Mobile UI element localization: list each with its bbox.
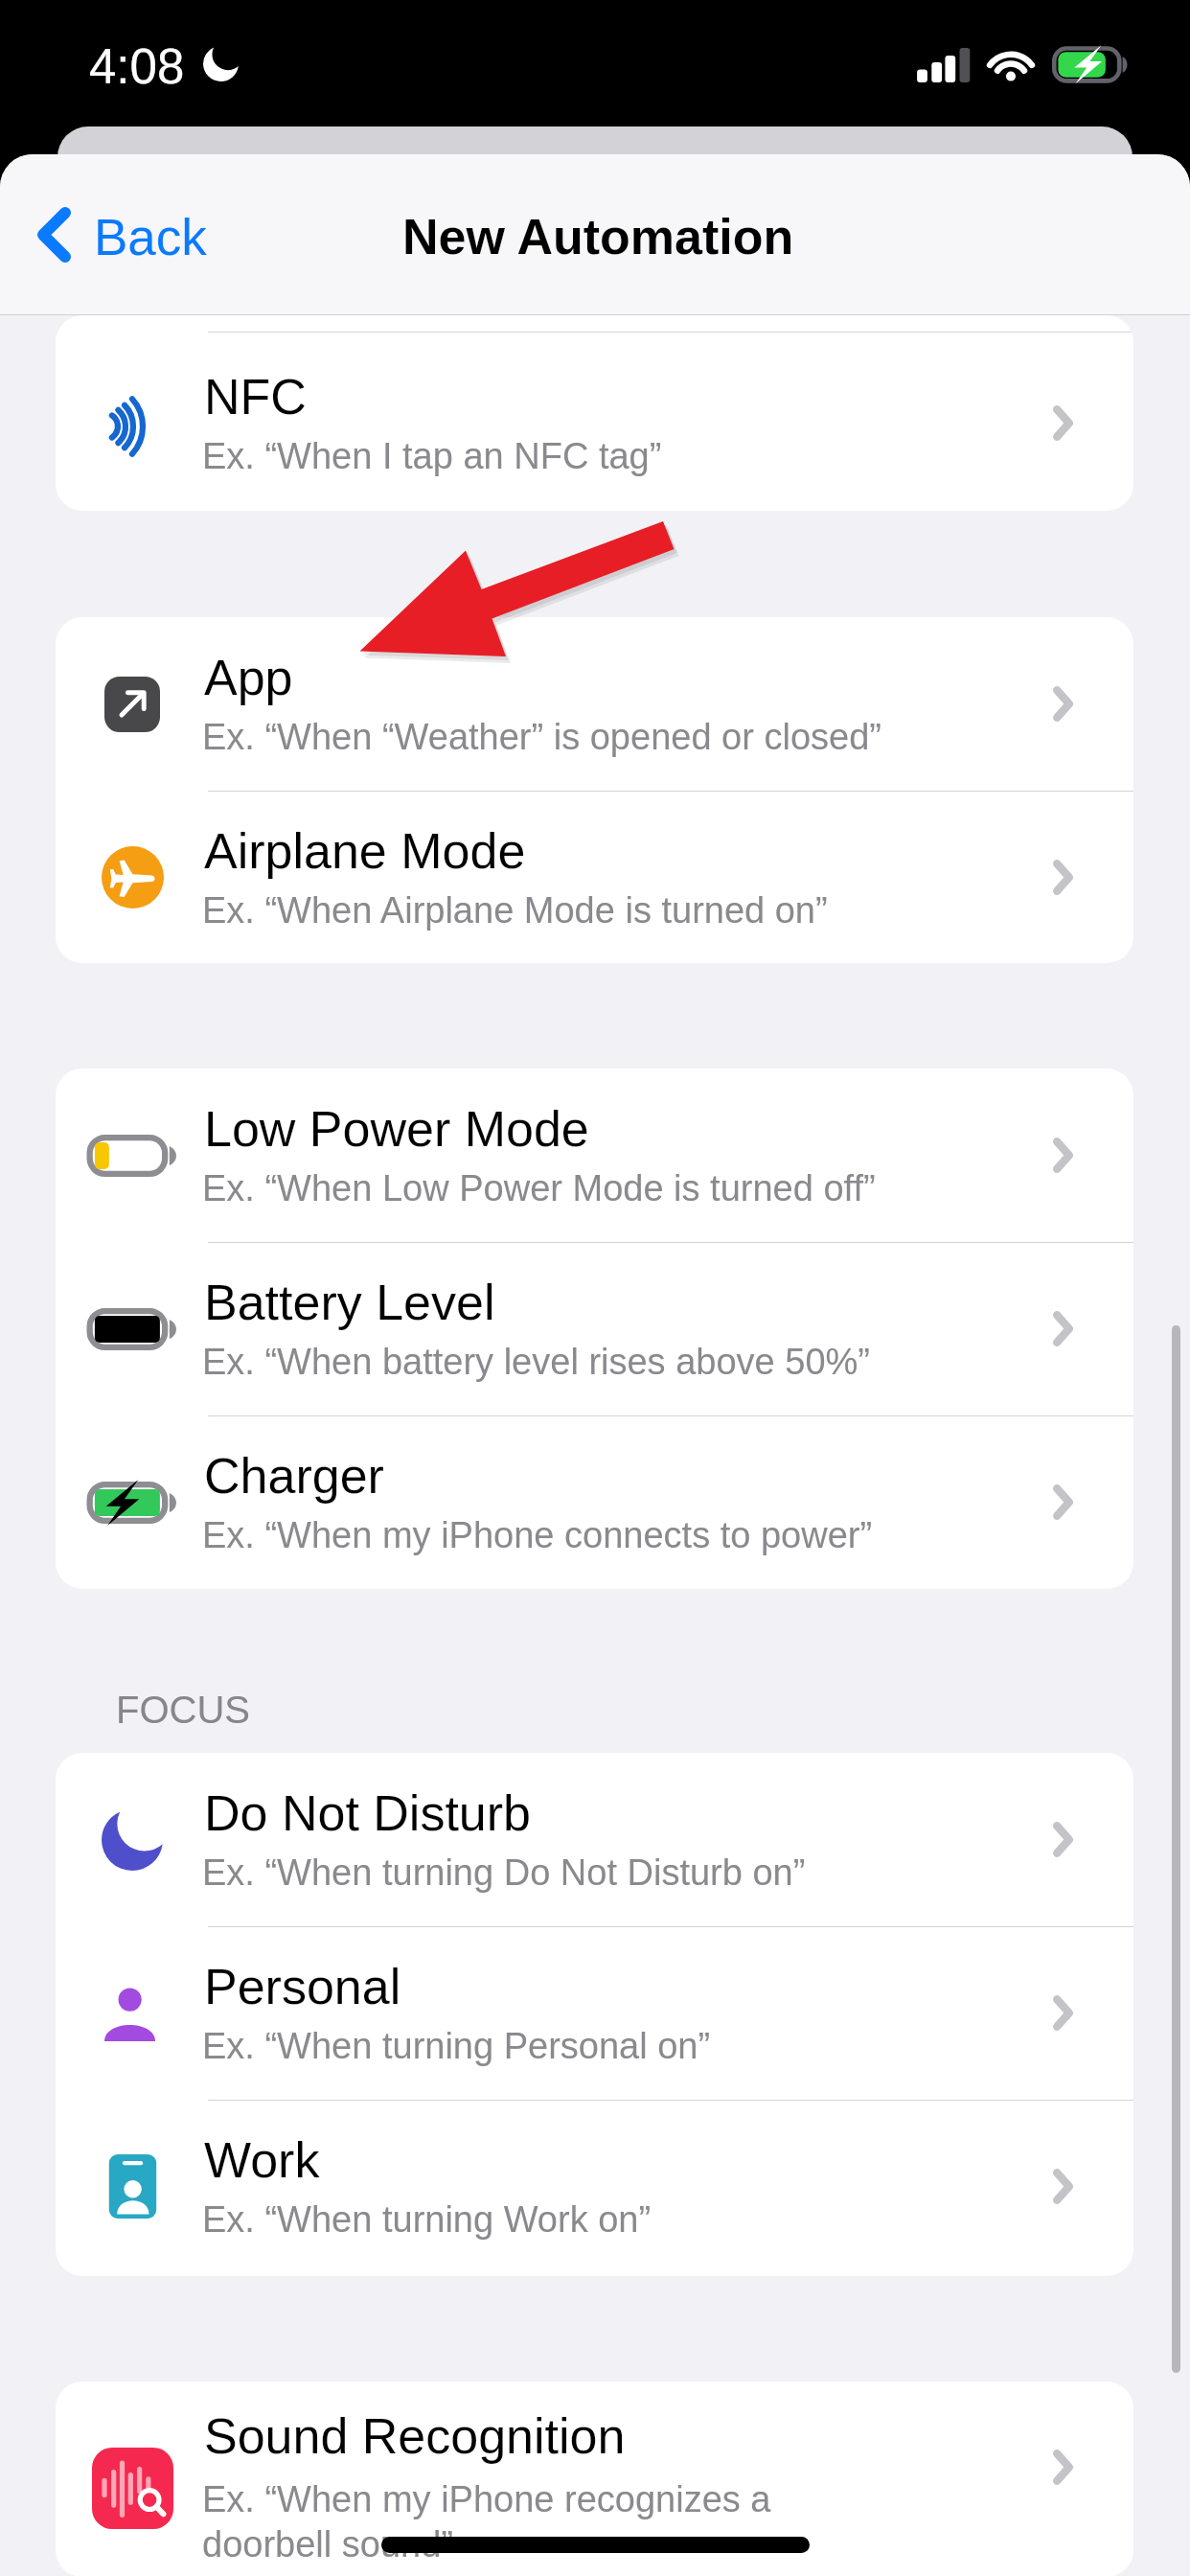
staticText: Battery Level (204, 1275, 495, 1330)
staticText: FOCUS (116, 1689, 250, 1732)
button[interactable]: Back (20, 189, 224, 280)
staticText: Ex. “When “Weather” is opened or closed” (202, 717, 881, 757)
staticText: Do Not Disturb (204, 1785, 531, 1841)
staticText: NFC (204, 369, 307, 425)
staticText: New Automation (402, 209, 794, 264)
staticText: Ex. “When turning Work on” (202, 2199, 652, 2240)
staticText: Ex. “When battery level rises above 50%” (202, 1342, 870, 1382)
button[interactable]: Personal (56, 1926, 1133, 2100)
staticText: Personal (204, 1959, 401, 2014)
staticText: doorbell sound” (202, 2524, 453, 2564)
button[interactable]: Sound Recognition (56, 2381, 1133, 2576)
staticText: Ex. “When I tap an NFC tag” (202, 436, 662, 476)
button[interactable]: NFC (56, 336, 1133, 510)
button[interactable]: App (56, 617, 1133, 791)
staticText: Sound Recognition (204, 2408, 626, 2464)
staticText: Back (94, 209, 207, 265)
staticText: Ex. “When my iPhone connects to power” (202, 1515, 873, 1555)
button[interactable]: Charger (56, 1415, 1133, 1589)
staticText: Charger (204, 1448, 384, 1504)
staticText: Ex. “When Airplane Mode is turned on” (202, 890, 828, 931)
button[interactable]: Low Power Mode (56, 1069, 1133, 1242)
staticText: Ex. “When turning Personal on” (202, 2026, 711, 2066)
staticText: Ex. “When my iPhone recognizes a (202, 2479, 771, 2519)
staticText: 4:08 (89, 39, 185, 94)
button[interactable]: Do Not Disturb (56, 1753, 1133, 1926)
staticText: Work (204, 2132, 320, 2188)
button[interactable]: Airplane Mode (56, 791, 1133, 963)
staticText: Airplane Mode (204, 823, 526, 879)
button[interactable]: Work (56, 2100, 1133, 2273)
staticText: App (204, 650, 293, 705)
staticText: Ex. “When Low Power Mode is turned off” (202, 1168, 876, 1208)
staticText: Ex. “When turning Do Not Disturb on” (202, 1852, 806, 1893)
staticText: Low Power Mode (204, 1101, 589, 1157)
button[interactable]: Battery Level (56, 1242, 1133, 1415)
